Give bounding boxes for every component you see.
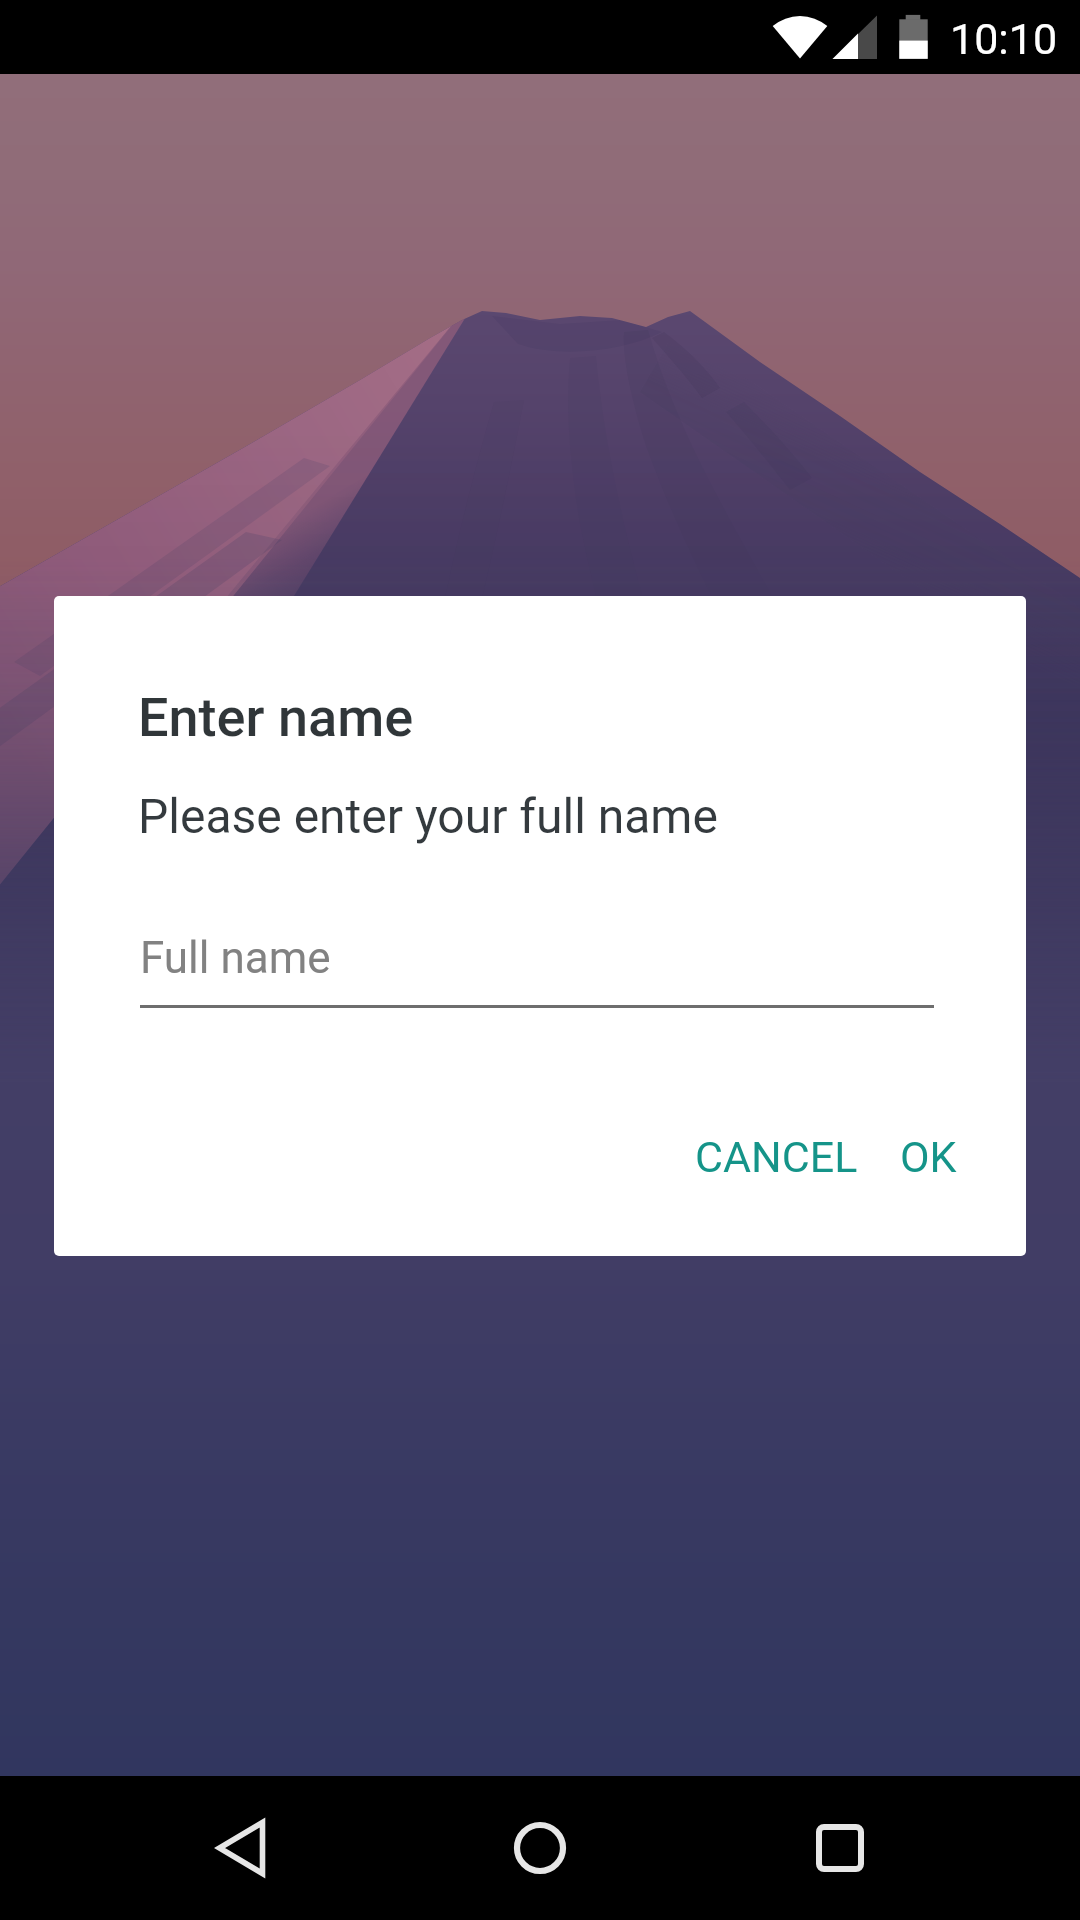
button[interactable]: Back <box>150 1776 330 1920</box>
staticText: Enter name <box>138 686 414 749</box>
staticText: CANCEL <box>695 1132 858 1182</box>
other: Mobile signal <box>832 15 878 60</box>
button[interactable]: CANCEL <box>679 1114 874 1200</box>
button[interactable]: Full name <box>140 932 934 1008</box>
other: Wi-Fi <box>757 16 843 60</box>
button[interactable]: Home <box>450 1776 630 1920</box>
staticText: 10:10 <box>950 14 1058 64</box>
staticText: OK <box>900 1132 957 1182</box>
other: Battery <box>897 13 931 61</box>
button[interactable]: Recent apps <box>750 1776 930 1920</box>
button[interactable]: OK <box>884 1114 973 1200</box>
staticText: Full name <box>140 932 331 984</box>
staticText: Please enter your full name <box>138 788 718 844</box>
